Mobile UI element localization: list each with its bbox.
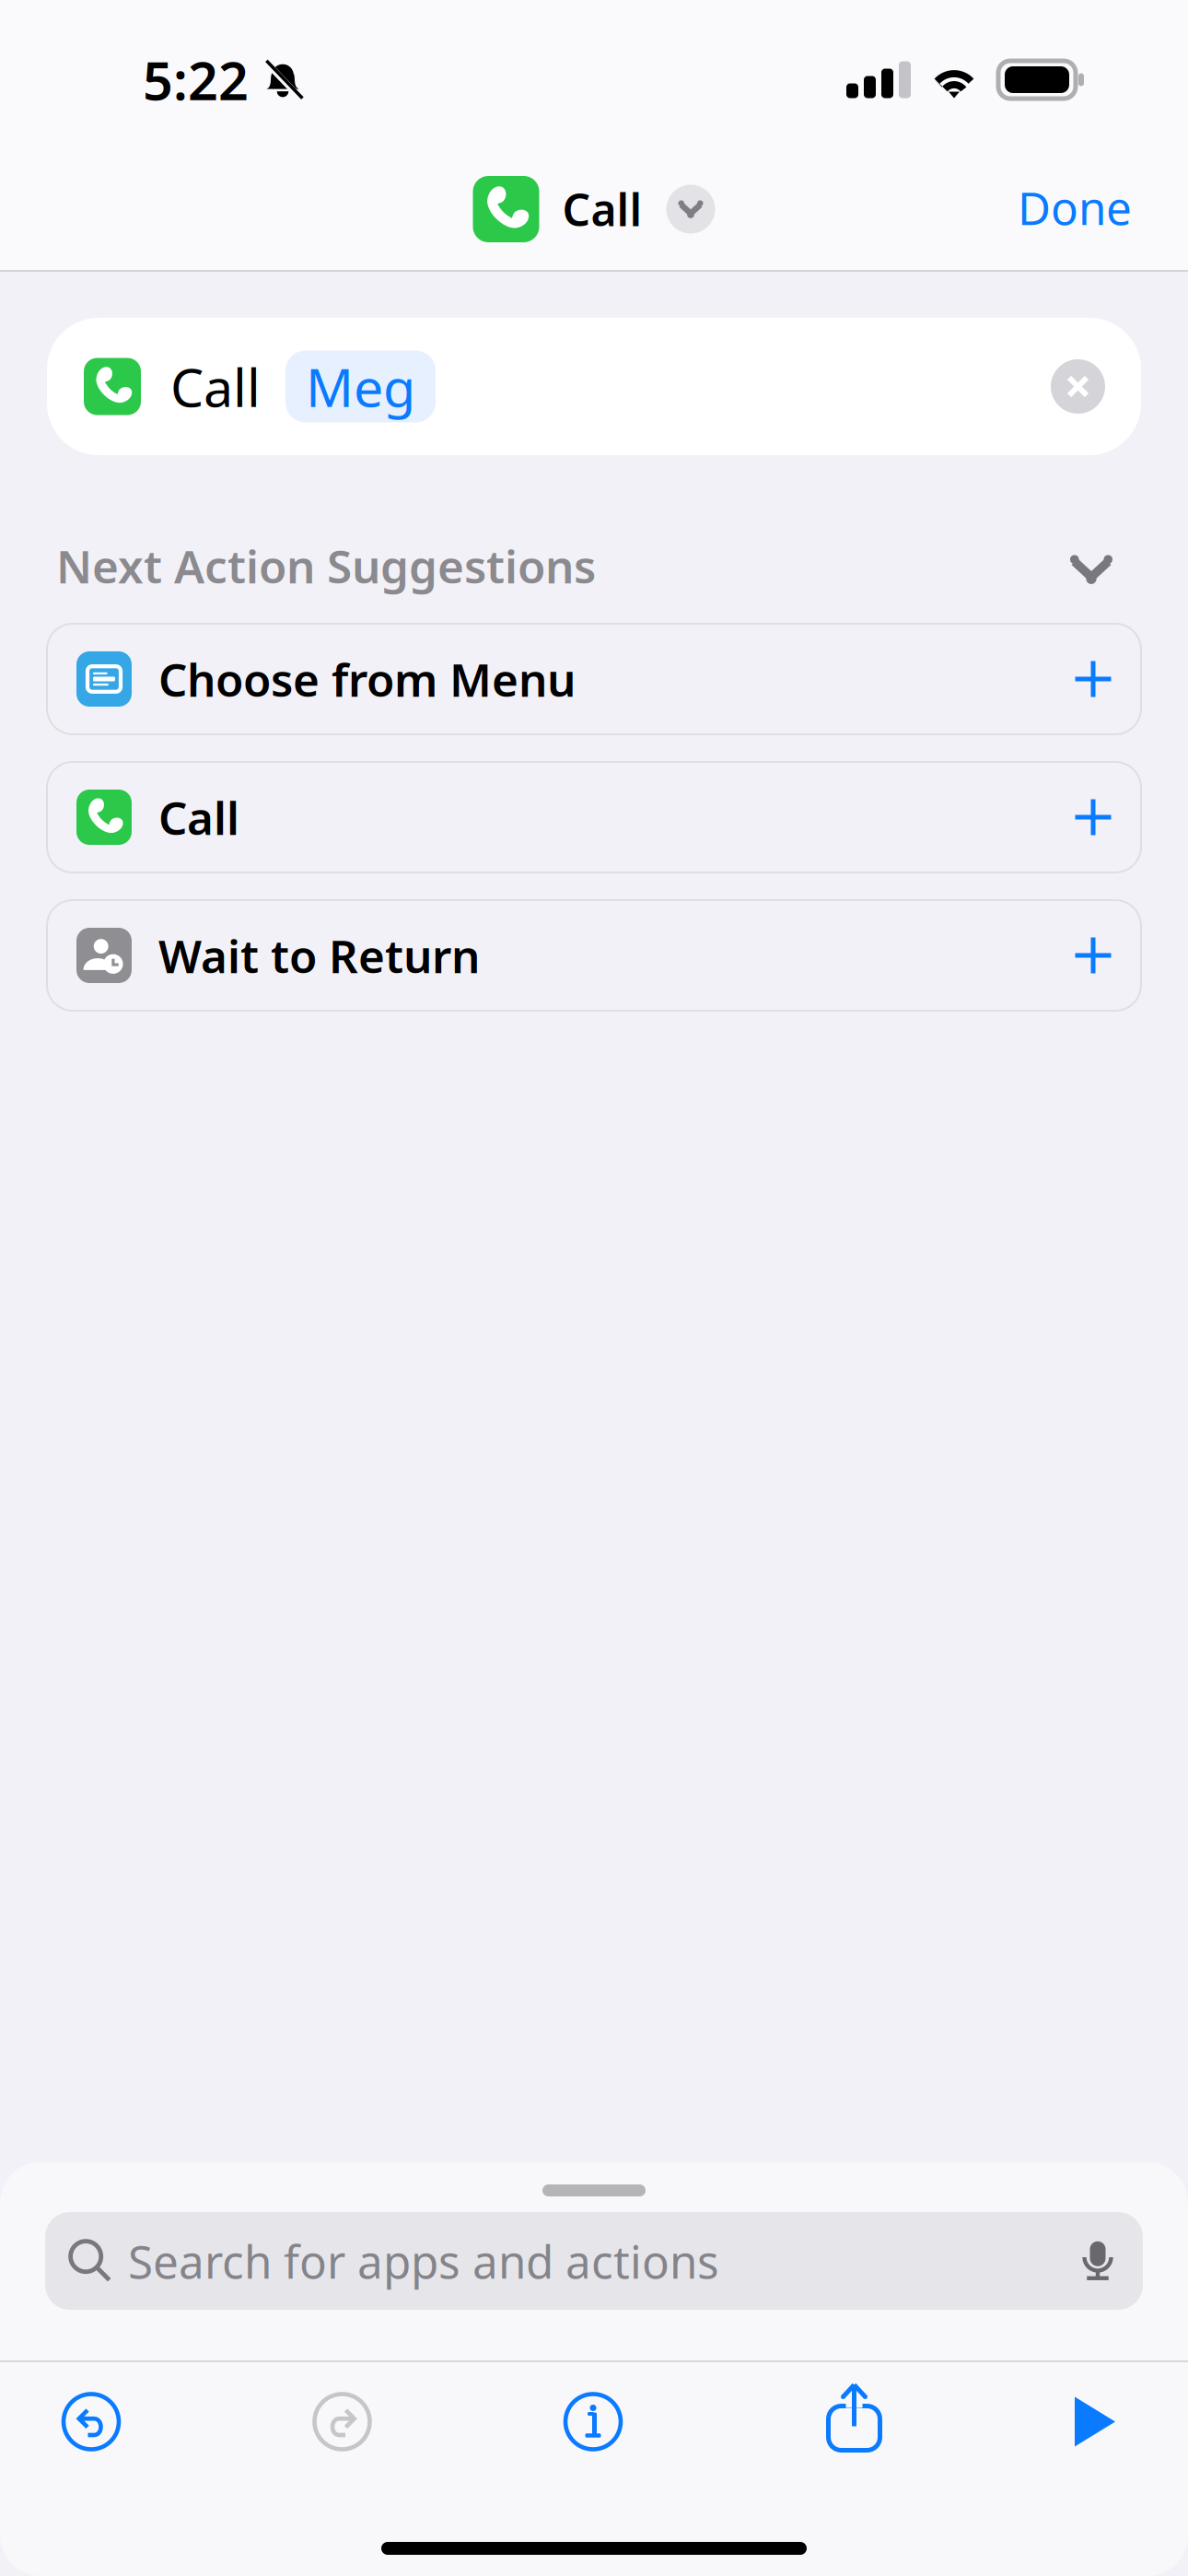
staticText: Next Action Suggestions xyxy=(56,535,596,596)
button[interactable]: Done xyxy=(1018,166,1188,263)
staticText: Call xyxy=(158,787,239,847)
button[interactable]: Redo xyxy=(307,2387,377,2457)
button[interactable]: Next Action Suggestions xyxy=(56,529,1112,603)
staticText: Call xyxy=(562,180,642,238)
staticText: Call xyxy=(170,351,261,422)
button[interactable]: Run shortcut xyxy=(1060,2387,1130,2457)
staticText: Meg xyxy=(306,351,415,422)
button[interactable]: Wait to Return xyxy=(47,900,1141,1011)
staticText: Choose from Menu xyxy=(158,649,576,709)
staticText: Wait to Return xyxy=(158,925,480,986)
button[interactable]: Details xyxy=(558,2387,628,2457)
button[interactable]: Call xyxy=(473,176,715,242)
staticText: Done xyxy=(1018,177,1132,237)
button[interactable]: Undo xyxy=(56,2387,126,2457)
staticText: Search for apps and actions xyxy=(128,2231,719,2291)
button[interactable]: Call xyxy=(47,762,1141,872)
button[interactable]: Call xyxy=(47,318,1141,455)
button[interactable]: Share xyxy=(809,2387,879,2457)
button[interactable]: Choose from Menu xyxy=(47,624,1141,734)
staticText: 5:22 xyxy=(143,45,249,115)
